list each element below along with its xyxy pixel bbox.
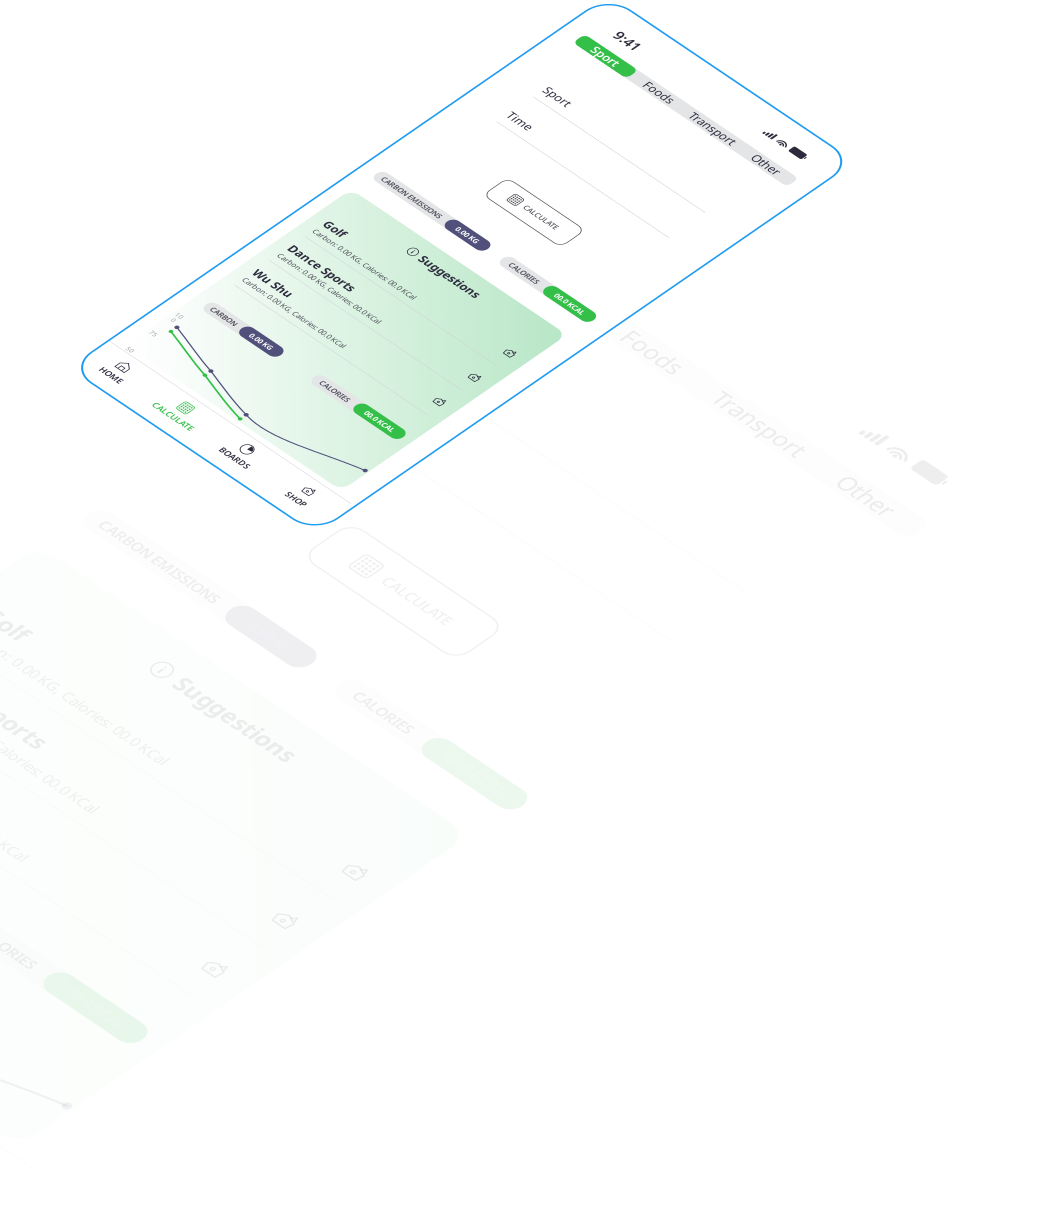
staticText: Suggestions	[147, 418, 235, 438]
button[interactable]: CALORIES	[199, 631, 335, 649]
button[interactable]: CARBON EMISSIONS	[20, 360, 190, 378]
staticText: CALORIES	[209, 634, 252, 646]
staticText: CARBON EMISSIONS	[29, 363, 118, 375]
button[interactable]: Share	[316, 566, 330, 580]
staticText: Carbon: 0.00 KG, Calories: 00.0 KCal	[35, 524, 189, 537]
staticText: 10	[22, 667, 32, 678]
staticText: 10	[22, 667, 32, 678]
button[interactable]: CALCULATE	[126, 276, 244, 313]
staticText: 0.00 KG	[142, 363, 175, 375]
button[interactable]: Share	[316, 513, 330, 527]
button[interactable]: Share	[316, 566, 330, 580]
staticText: CARBON EMISSIONS	[29, 363, 118, 375]
button[interactable]: CALORIES	[199, 631, 335, 649]
button[interactable]: CALORIES	[212, 360, 351, 378]
staticText: 00.0 KCAL	[277, 634, 320, 646]
staticText: 50	[22, 741, 32, 752]
staticText: 50	[22, 741, 32, 752]
staticText: Suggestions	[147, 418, 235, 438]
button[interactable]: CALORIES	[212, 360, 351, 378]
staticText: CALCULATE	[170, 288, 220, 301]
staticText: Carbon: 0.00 KG, Calories: 00.0 KCal	[35, 524, 189, 537]
staticText: 00.0 KCAL	[277, 634, 320, 646]
staticText: CALCULATE	[170, 288, 220, 301]
staticText: CALORIES	[209, 634, 252, 646]
button[interactable]: CARBON EMISSIONS	[20, 360, 190, 378]
button[interactable]: Share	[316, 513, 330, 527]
staticText: 0.00 KG	[142, 363, 175, 375]
button[interactable]: CALCULATE	[126, 276, 244, 313]
